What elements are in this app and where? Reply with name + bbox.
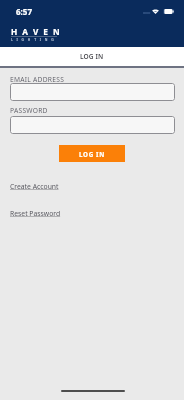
staticText: LOG IN bbox=[79, 150, 105, 158]
button[interactable]: Create Account bbox=[10, 182, 59, 191]
button[interactable] bbox=[10, 116, 175, 134]
staticText: Reset Password bbox=[10, 209, 61, 218]
other: Wi-Fi bbox=[152, 9, 159, 14]
staticText: L I G H T I N G bbox=[11, 37, 56, 42]
other: Battery bbox=[163, 9, 175, 14]
button[interactable] bbox=[10, 83, 175, 101]
staticText: EMAIL ADDRESS bbox=[10, 75, 65, 84]
staticText: Create Account bbox=[10, 182, 59, 191]
staticText: H A V E N bbox=[11, 26, 62, 37]
staticText: 6:57 bbox=[16, 6, 32, 17]
button[interactable]: Reset Password bbox=[10, 209, 61, 218]
staticText: LOG IN bbox=[80, 52, 104, 61]
button[interactable]: LOG IN bbox=[59, 145, 125, 162]
staticText: PASSWORD bbox=[10, 106, 48, 115]
